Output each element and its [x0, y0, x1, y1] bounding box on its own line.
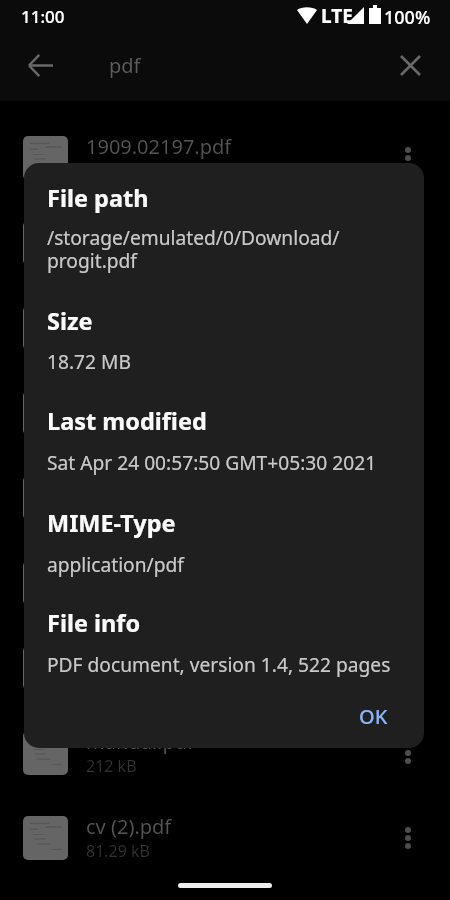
staticText: iosdc2019.pdf [86, 218, 218, 245]
staticText: cv (2).pdf [86, 813, 172, 840]
button[interactable]: iosdc2019.pdf [0, 201, 450, 285]
button[interactable]: invoice.pdf [0, 371, 450, 455]
staticText: manual.pdf [86, 728, 194, 755]
button[interactable]: Clear search [388, 43, 432, 87]
button[interactable]: report.pdf [0, 456, 450, 540]
staticText: OK [359, 703, 388, 730]
staticText: /storage/emulated/0/Download/ [47, 224, 340, 250]
staticText: 1909.02197.pdf [86, 133, 232, 160]
staticText: 120 kB [86, 670, 137, 692]
button[interactable]: manual.pdf [0, 711, 450, 795]
button[interactable]: 1909.02197.pdf [0, 116, 450, 200]
button[interactable]: More options [390, 646, 426, 690]
staticText: Size [47, 305, 93, 337]
button[interactable]: sample-a.pdf [0, 286, 450, 370]
button[interactable]: guide.pdf [0, 626, 450, 710]
staticText: invoice.pdf [86, 388, 189, 415]
button[interactable]: More options [390, 391, 426, 435]
button[interactable]: More options [390, 136, 426, 180]
staticText: guide.pdf [86, 643, 177, 670]
staticText: PDF document, version 1.4, 522 pages [47, 651, 391, 677]
staticText: 3.40 MB [86, 415, 147, 437]
staticText: sample-a.pdf [86, 303, 209, 330]
staticText: report.pdf [86, 473, 182, 500]
button[interactable]: thesis.pdf [0, 541, 450, 625]
staticText: 680 kB [86, 500, 137, 522]
staticText: application/pdf [47, 551, 184, 577]
button[interactable]: OK [338, 693, 408, 739]
staticText: pdf [109, 52, 141, 79]
staticText: 81.29 kB [86, 840, 151, 862]
staticText: progit.pdf [47, 247, 137, 273]
button[interactable]: More options [390, 306, 426, 350]
staticText: 11:00 [21, 5, 65, 28]
button[interactable]: More options [390, 561, 426, 605]
button[interactable]: More options [390, 221, 426, 265]
staticText: 100% [384, 5, 431, 30]
staticText: File path [47, 182, 149, 214]
staticText: MIME-Type [47, 507, 176, 539]
staticText: Sat Apr 24 00:57:50 GMT+05:30 2021 [47, 449, 377, 475]
staticText: File info [47, 607, 141, 639]
staticText: 212 kB [86, 755, 137, 777]
staticText: 2.13 MB [86, 160, 147, 182]
staticText: 18.72 MB [47, 348, 131, 374]
button[interactable]: Back [18, 43, 63, 88]
button[interactable]: More options [390, 731, 426, 775]
staticText: Last modified [47, 405, 207, 437]
button[interactable]: More options [390, 476, 426, 520]
staticText: LTE [321, 3, 353, 29]
staticText: 1.02 MB [86, 245, 147, 267]
staticText: thesis.pdf [86, 558, 179, 585]
button[interactable]: cv (2).pdf [0, 796, 450, 880]
button[interactable]: More options [390, 816, 426, 860]
